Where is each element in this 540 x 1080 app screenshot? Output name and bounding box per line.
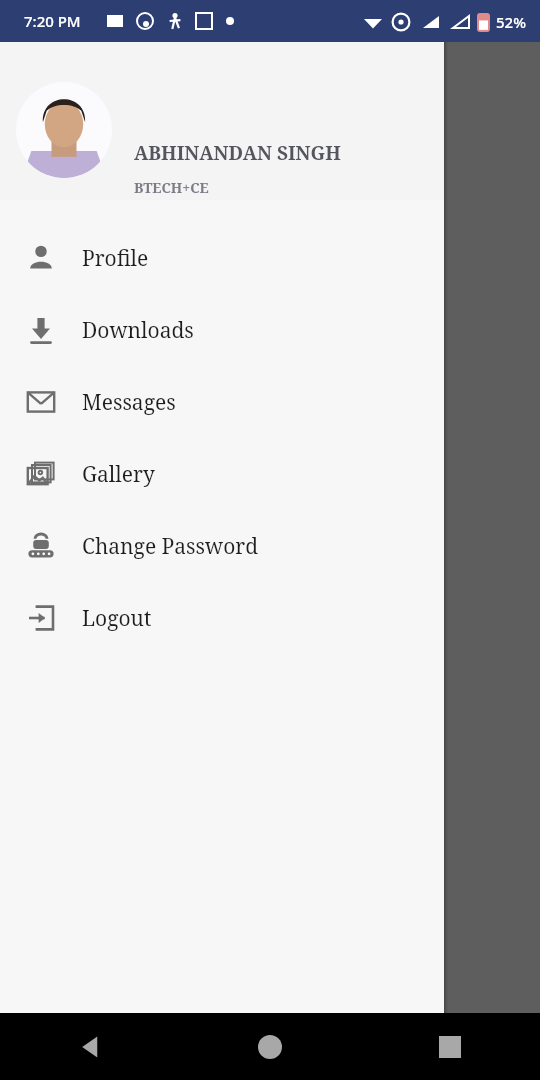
- other: Change Password: [26, 531, 56, 561]
- staticText: Logout: [82, 604, 152, 633]
- staticText: Gallery: [82, 460, 155, 489]
- staticText: Documents: [416, 778, 504, 807]
- staticText: 52%: [496, 12, 526, 32]
- button[interactable]: Downloads: [0, 294, 444, 366]
- staticText: Messages: [82, 388, 176, 417]
- button[interactable]: Recent apps: [360, 1013, 540, 1080]
- staticText: ABHINANDAN SINGH: [134, 140, 341, 166]
- staticText: Downloads: [82, 316, 194, 345]
- staticText: Results: [416, 508, 488, 537]
- staticText: Attendances: [416, 688, 504, 717]
- button[interactable]: Messages: [0, 366, 444, 438]
- button[interactable]: ABHINANDAN SINGH: [0, 42, 444, 200]
- staticText: Profile: [82, 244, 149, 273]
- other: Downloads: [26, 315, 56, 345]
- button[interactable]: Change Password: [0, 510, 444, 582]
- staticText: 7:20 PM: [24, 11, 81, 31]
- button[interactable]: Logout: [0, 582, 444, 654]
- other: Profile: [26, 243, 56, 273]
- button[interactable]: Home: [180, 1013, 360, 1080]
- staticText: Change Password: [82, 532, 259, 561]
- button[interactable]: Profile: [0, 222, 444, 294]
- button[interactable]: Gallery: [0, 438, 444, 510]
- other: Messages: [26, 387, 56, 417]
- staticText: Notices: [416, 418, 490, 447]
- other: Gallery: [26, 459, 56, 489]
- staticText: BTECH+CE: [134, 178, 209, 197]
- staticText: Catalog: [400, 74, 485, 107]
- staticText: Library: [416, 598, 492, 627]
- other: Logout: [26, 603, 56, 633]
- button[interactable]: Back: [0, 1013, 180, 1080]
